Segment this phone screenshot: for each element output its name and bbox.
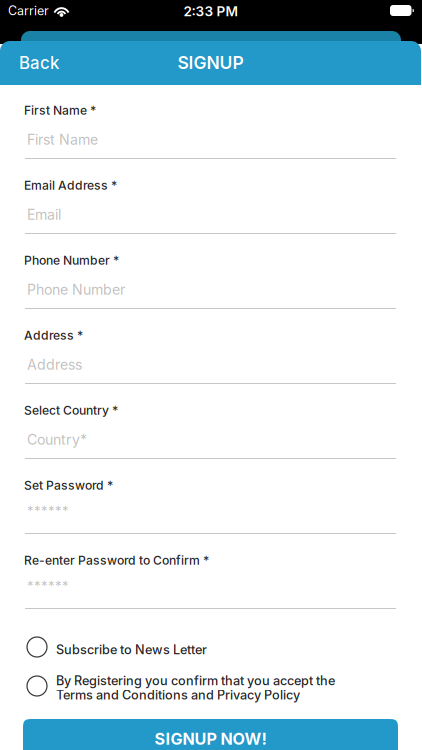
- staticText: Set Password *: [24, 478, 113, 493]
- staticText: By Registering you confirm that you acce…: [56, 673, 335, 688]
- staticText: Phone Number *: [24, 253, 119, 268]
- staticText: Address: [27, 356, 82, 373]
- staticText: Subscribe to News Letter: [56, 642, 207, 657]
- button[interactable]: SIGNUP NOW!: [23, 719, 398, 750]
- staticText: SIGNUP: [177, 52, 243, 73]
- staticText: SIGNUP NOW!: [154, 729, 266, 749]
- staticText: Phone Number: [27, 281, 125, 298]
- staticText: Email Address *: [24, 178, 117, 193]
- button[interactable]: Subscribe to News Letter: [27, 637, 399, 667]
- staticText: Email: [27, 206, 61, 223]
- staticText: ******: [27, 503, 69, 519]
- staticText: Carrier: [8, 3, 49, 18]
- staticText: Country*: [27, 431, 87, 448]
- staticText: Address *: [24, 328, 83, 343]
- staticText: First Name *: [24, 103, 96, 118]
- staticText: Select Country *: [24, 403, 118, 418]
- staticText: Back: [19, 53, 59, 73]
- staticText: ******: [27, 578, 69, 594]
- staticText: Terms and Conditions and Privacy Policy: [56, 687, 300, 703]
- staticText: Re-enter Password to Confirm *: [24, 553, 209, 568]
- button[interactable]: Back: [0, 41, 56, 85]
- staticText: 2:33 PM: [183, 3, 238, 19]
- button[interactable]: Accept Terms and Conditions and Privacy …: [27, 668, 399, 698]
- staticText: First Name: [27, 131, 98, 148]
